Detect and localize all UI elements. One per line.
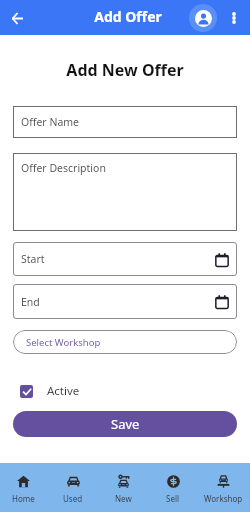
button[interactable]: Sell [150, 463, 200, 512]
staticText: Save [111, 415, 140, 433]
staticText: Add New Offer [0, 59, 250, 81]
button[interactable]: Offer Description [13, 153, 237, 231]
button[interactable]: Offer Name [13, 106, 237, 138]
button[interactable]: Used [50, 463, 100, 512]
button[interactable]: Save [13, 411, 237, 437]
button[interactable]: Pick date [214, 252, 229, 267]
staticText: Add Offer [3, 7, 250, 26]
button[interactable]: New [100, 463, 150, 512]
staticText: Used [63, 493, 83, 504]
staticText: Start [21, 252, 45, 266]
staticText: New [115, 493, 132, 504]
staticText: Workshop [204, 493, 243, 504]
button[interactable]: End [13, 284, 237, 319]
button[interactable]: Home [0, 463, 50, 512]
staticText: Select Workshop [26, 336, 101, 349]
button[interactable]: Start [13, 242, 237, 276]
staticText: Active [47, 383, 80, 399]
button[interactable]: Back [5, 6, 29, 30]
button[interactable]: Account [189, 4, 217, 32]
button[interactable]: Select Workshop [13, 330, 237, 354]
staticText: End [21, 295, 40, 309]
button[interactable]: Pick date [214, 294, 229, 309]
button[interactable]: Workshop [200, 463, 250, 512]
staticText: Sell [166, 493, 180, 504]
staticText: Offer Name [21, 115, 80, 129]
button[interactable]: Active [20, 383, 80, 399]
staticText: Offer Description [21, 161, 106, 175]
button[interactable]: More options [224, 8, 244, 28]
staticText: Home [12, 493, 35, 504]
